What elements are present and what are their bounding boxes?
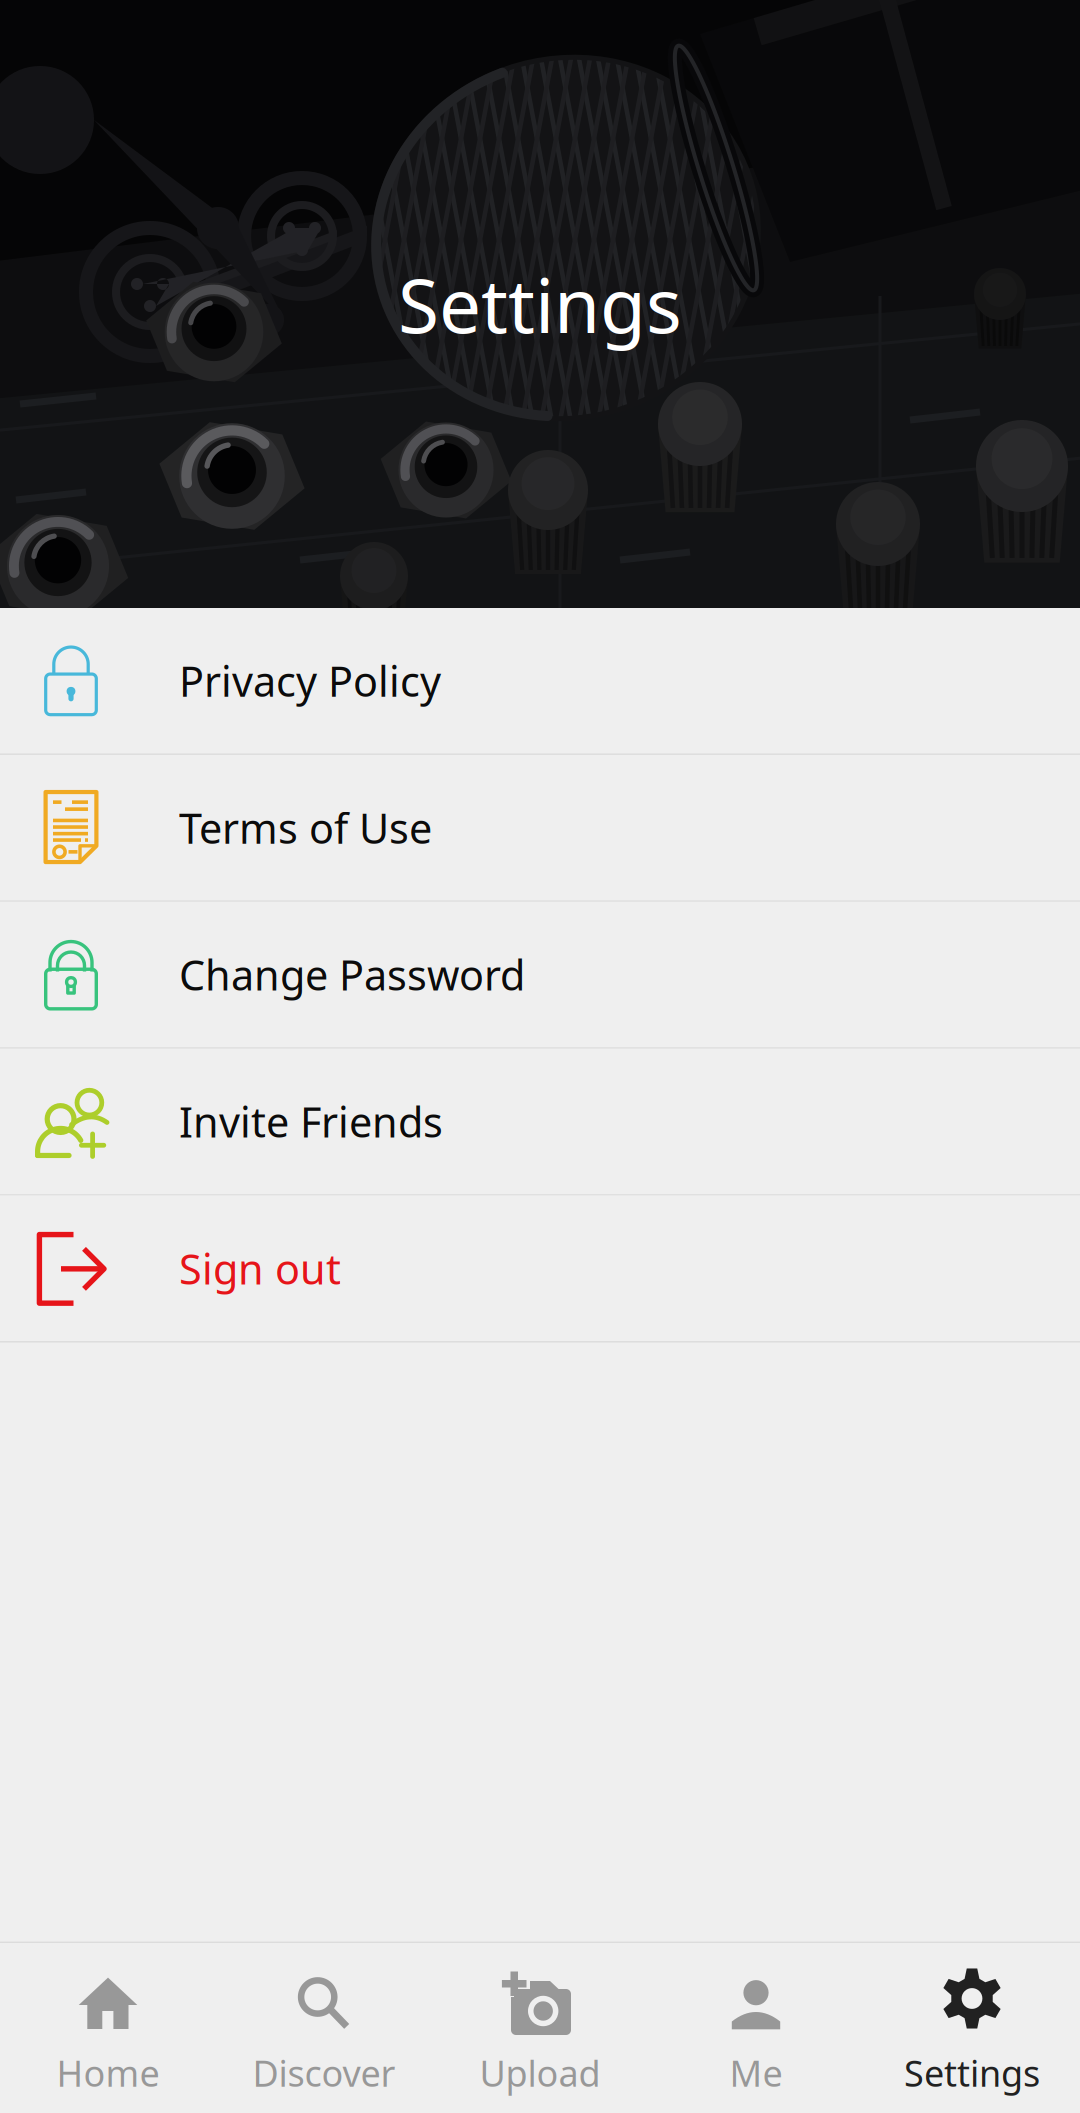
staticText: Me (729, 2049, 782, 2097)
staticText: Home (56, 2049, 159, 2097)
staticText: Privacy Policy (179, 653, 441, 708)
staticText: Discover (252, 2049, 395, 2097)
button[interactable]: Terms of Use (0, 755, 1080, 900)
button[interactable]: Home (0, 1943, 216, 2113)
staticText: Change Password (179, 947, 525, 1002)
button[interactable]: Discover (216, 1943, 432, 2113)
button[interactable]: Sign out (0, 1196, 1080, 1341)
staticText: Settings (398, 254, 682, 354)
button[interactable]: Privacy Policy (0, 608, 1080, 753)
button[interactable]: Settings (864, 1943, 1080, 2113)
staticText: Sign out (179, 1241, 341, 1296)
button[interactable]: Invite Friends (0, 1049, 1080, 1194)
staticText: Invite Friends (179, 1094, 443, 1149)
staticText: Terms of Use (179, 800, 432, 855)
button[interactable]: Me (648, 1943, 864, 2113)
button[interactable]: Upload (432, 1943, 648, 2113)
staticText: Upload (479, 2049, 600, 2097)
button[interactable]: Change Password (0, 902, 1080, 1047)
staticText: Settings (904, 2049, 1040, 2097)
